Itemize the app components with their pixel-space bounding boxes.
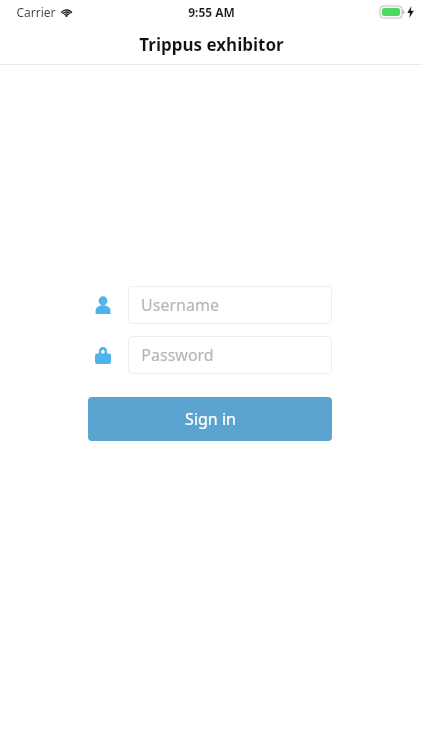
- other: Username: [94, 296, 112, 314]
- staticText: Username: [141, 294, 219, 316]
- staticText: 9:55 AM: [188, 4, 235, 20]
- staticText: Trippus exhibitor: [139, 33, 284, 56]
- staticText: Sign in: [185, 408, 236, 430]
- button[interactable]: Username: [128, 286, 332, 324]
- button[interactable]: Password: [128, 336, 332, 374]
- button[interactable]: Sign in: [88, 397, 332, 441]
- staticText: Carrier: [16, 4, 56, 20]
- other: Password: [95, 346, 111, 364]
- staticText: Password: [141, 344, 214, 366]
